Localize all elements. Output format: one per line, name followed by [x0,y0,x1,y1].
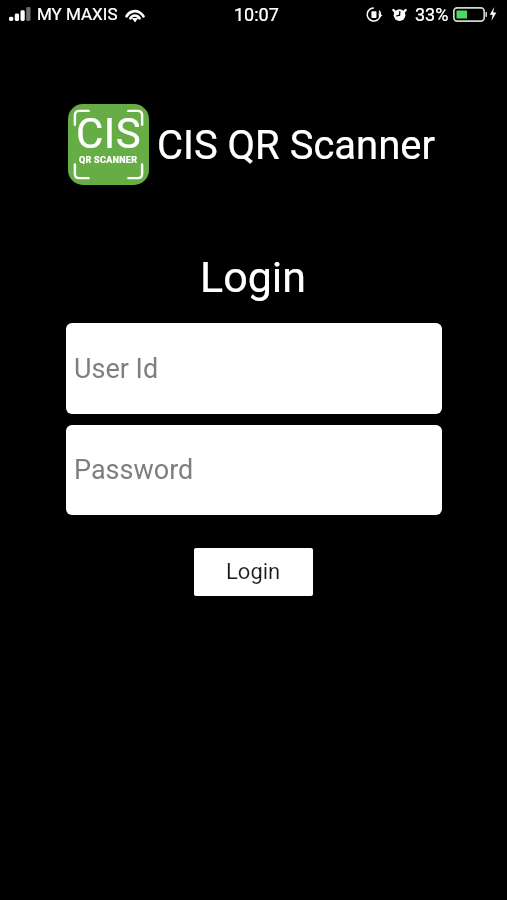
other: Mobile signal [9,7,32,21]
other: Alarm set [392,7,407,22]
staticText: MY MAXIS [37,4,118,24]
staticText: User Id [74,353,159,385]
staticText: Login [200,252,307,302]
staticText: 10:07 [234,4,279,25]
other: Auto-rotate locked [366,7,383,22]
other: Wi-Fi [125,7,145,22]
other: Battery 33 percent [453,7,488,22]
other: CIS QR Scanner logo [68,104,149,185]
button[interactable]: User Id [66,323,442,414]
button[interactable]: Login [194,548,313,596]
staticText: Password [74,454,194,486]
staticText: CIS QR Scanner [157,122,436,169]
staticText: CIS [76,109,142,158]
other: Charging [489,7,497,21]
staticText: QR SCANNER [79,155,138,166]
staticText: 33% [415,4,449,25]
button[interactable]: Password [66,425,442,515]
staticText: Login [226,559,281,585]
